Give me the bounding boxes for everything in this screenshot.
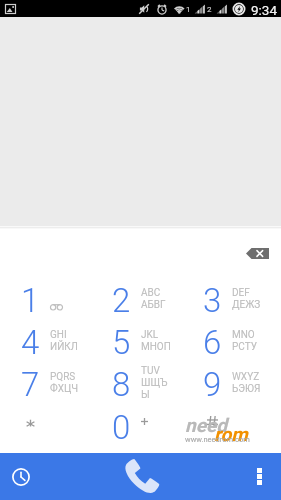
staticText: Ы bbox=[141, 389, 150, 401]
staticText: 9 bbox=[203, 365, 222, 404]
staticText: 3 bbox=[203, 281, 222, 320]
staticText: 9:34 bbox=[251, 2, 278, 18]
staticText: 2 bbox=[207, 5, 212, 14]
button[interactable] bbox=[4, 406, 95, 449]
button[interactable]: 5 bbox=[95, 321, 186, 364]
button[interactable]: 1 bbox=[4, 279, 95, 322]
button[interactable]: Backspace bbox=[238, 240, 276, 267]
staticText: need bbox=[185, 414, 227, 436]
staticText: PQRS bbox=[50, 371, 76, 383]
staticText: 0 bbox=[112, 408, 131, 447]
staticText: ABC bbox=[141, 287, 161, 299]
staticText: РСТУ bbox=[232, 341, 257, 353]
staticText: 5 bbox=[112, 323, 131, 362]
button[interactable]: 3 bbox=[186, 279, 277, 322]
staticText: 8 bbox=[112, 365, 131, 404]
staticText: АБВГ bbox=[141, 299, 166, 311]
staticText: 1 bbox=[186, 5, 191, 14]
button[interactable]: 8 bbox=[95, 363, 186, 406]
staticText: WXYZ bbox=[232, 371, 260, 383]
staticText: ЬЭЮЯ bbox=[232, 383, 261, 395]
button[interactable]: 7 bbox=[4, 363, 95, 406]
button[interactable]: More options bbox=[211, 453, 281, 500]
staticText: DEF bbox=[232, 287, 250, 299]
button[interactable]: 2 bbox=[95, 279, 186, 322]
button[interactable] bbox=[186, 406, 277, 449]
staticText: ДЕЖЗ bbox=[232, 299, 261, 311]
staticText: 4 bbox=[21, 323, 40, 362]
staticText: TUV bbox=[141, 365, 160, 377]
button[interactable]: Call history bbox=[0, 453, 70, 500]
button[interactable]: 6 bbox=[186, 321, 277, 364]
staticText: МНОП bbox=[141, 341, 171, 353]
staticText: www.needrom.com bbox=[185, 435, 250, 444]
staticText: 2 bbox=[112, 281, 131, 320]
button[interactable]: 0 bbox=[95, 406, 186, 449]
button[interactable]: 9 bbox=[186, 363, 277, 406]
staticText: 7 bbox=[21, 365, 40, 404]
staticText: 6 bbox=[203, 323, 222, 362]
button[interactable]: Dial pad bbox=[93, 453, 188, 500]
staticText: ИЙКЛ bbox=[50, 341, 78, 353]
staticText: GHI bbox=[50, 329, 67, 341]
staticText: MNO bbox=[232, 329, 255, 341]
button[interactable]: 4 bbox=[4, 321, 95, 364]
staticText: ШЩЪ bbox=[141, 377, 168, 389]
staticText: rom bbox=[214, 423, 248, 445]
staticText: ФХЦЧ bbox=[50, 383, 79, 395]
staticText: JKL bbox=[141, 329, 159, 341]
staticText: 1 bbox=[21, 281, 40, 320]
